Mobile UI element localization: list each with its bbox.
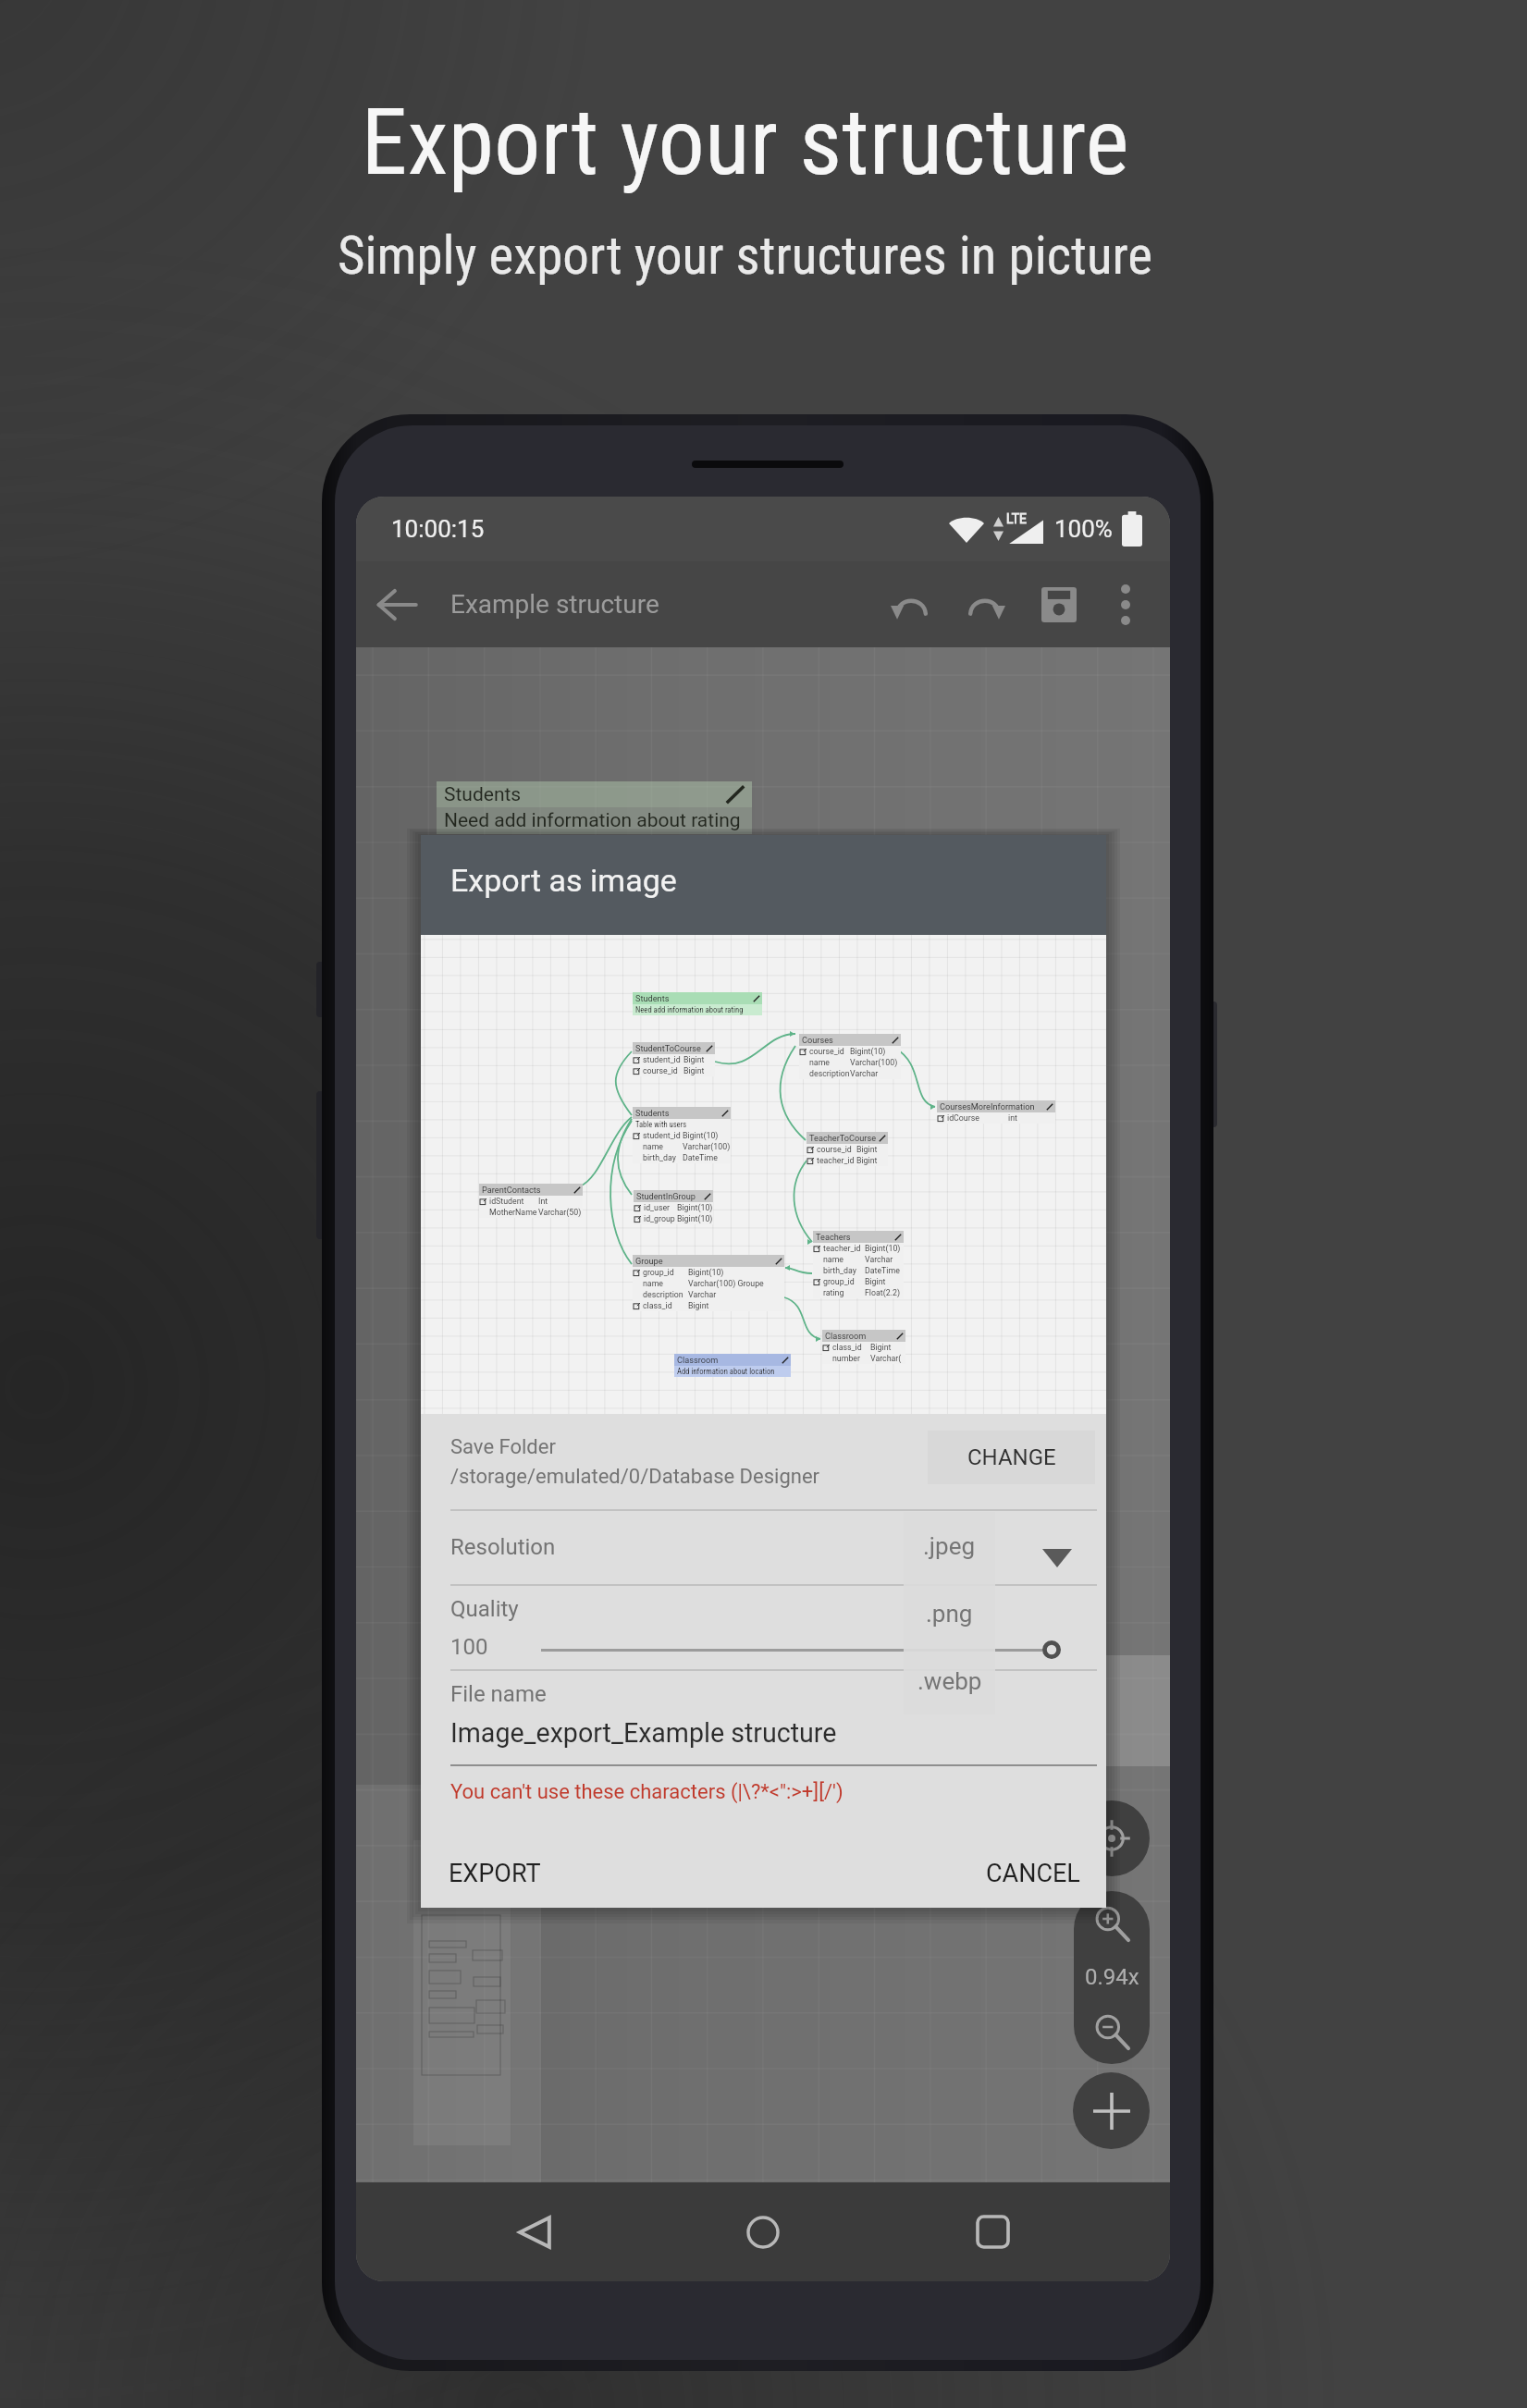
- staticText: Image_export_Example structure: [450, 1717, 837, 1749]
- button[interactable]: .webp: [904, 1647, 995, 1714]
- staticText: birth_day: [823, 1266, 865, 1275]
- staticText: Teachers: [816, 1232, 851, 1242]
- staticText: Varchar(50): [538, 1208, 583, 1217]
- staticText: student_id: [643, 1131, 683, 1140]
- staticText: class_id: [832, 1343, 870, 1352]
- staticText: .webp: [917, 1667, 982, 1695]
- staticText: File name: [450, 1681, 547, 1707]
- staticText: LTE: [1006, 511, 1027, 526]
- staticText: name: [643, 1279, 688, 1288]
- staticText: CHANGE: [967, 1444, 1056, 1470]
- staticText: Float(2.2): [865, 1288, 904, 1297]
- button[interactable]: Back: [484, 2182, 585, 2281]
- button[interactable]: Home: [712, 2182, 814, 2281]
- staticText: Varchar(5): [870, 1354, 905, 1363]
- staticText: Example structure: [450, 589, 659, 620]
- staticText: Varchar: [688, 1290, 784, 1299]
- staticText: ParentContacts: [482, 1185, 541, 1195]
- staticText: Bigint(10): [688, 1268, 784, 1277]
- staticText: 100%: [1054, 515, 1113, 543]
- staticText: Bigint: [865, 1277, 904, 1286]
- button[interactable]: EXPORT: [438, 1849, 551, 1898]
- staticText: Varchar(100): [683, 1142, 731, 1151]
- staticText: You can't use these characters (|\?*<":>…: [450, 1780, 844, 1804]
- staticText: course_id: [643, 1066, 683, 1075]
- button[interactable]: Navigate up: [356, 564, 437, 645]
- staticText: CANCEL: [986, 1859, 1080, 1888]
- staticText: group_id: [643, 1268, 688, 1277]
- staticText: DateTime: [865, 1266, 904, 1275]
- staticText: 10:00:15: [391, 515, 485, 543]
- staticText: Export your structure: [0, 88, 1509, 197]
- staticText: e: [1050, 1533, 1062, 1559]
- staticText: birth_day: [643, 1153, 683, 1162]
- staticText: Courses: [802, 1035, 833, 1045]
- staticText: teacher_id: [817, 1156, 856, 1165]
- button[interactable]: Add table: [1073, 2072, 1150, 2149]
- staticText: TeacherToCourse: [809, 1133, 877, 1143]
- button[interactable]: Redo: [948, 568, 1022, 642]
- staticText: Bigint: [870, 1343, 905, 1352]
- staticText: group_id: [823, 1277, 865, 1286]
- staticText: Add information about location: [677, 1367, 775, 1376]
- staticText: Groupe: [635, 1256, 663, 1266]
- staticText: Students: [444, 783, 522, 806]
- staticText: Students: [635, 993, 670, 1003]
- staticText: Bigint(10): [677, 1214, 713, 1223]
- staticText: Varchar: [850, 1069, 901, 1078]
- staticText: id_user: [644, 1203, 677, 1212]
- staticText: course_id: [809, 1047, 850, 1056]
- staticText: idStudent: [489, 1197, 538, 1206]
- staticText: Int: [538, 1197, 583, 1206]
- staticText: MotherName: [489, 1208, 538, 1217]
- staticText: Bigint(10): [865, 1244, 904, 1253]
- button[interactable]: .png: [904, 1579, 995, 1647]
- staticText: DateTime: [683, 1153, 731, 1162]
- button[interactable]: Recent apps: [942, 2182, 1043, 2281]
- button[interactable]: Zoom out: [1074, 1998, 1150, 2064]
- staticText: Bigint(10): [677, 1203, 713, 1212]
- staticText: /storage/emulated/0/Database Designer: [450, 1465, 820, 1489]
- staticText: Need add information about rating: [635, 1005, 744, 1014]
- staticText: description: [643, 1290, 688, 1299]
- staticText: Bigint(10): [850, 1047, 901, 1056]
- staticText: CoursesMoreInformation: [940, 1101, 1035, 1112]
- staticText: class_id: [643, 1301, 688, 1310]
- staticText: Save Folder: [450, 1435, 556, 1459]
- staticText: student_id: [643, 1055, 683, 1064]
- button[interactable]: Zoom in: [1074, 1891, 1150, 1956]
- staticText: Classroom: [677, 1355, 719, 1365]
- staticText: name: [643, 1142, 683, 1151]
- staticText: Bigint: [688, 1301, 784, 1310]
- staticText: Varchar(100) Groupe number: [688, 1279, 784, 1288]
- staticText: course_id: [817, 1145, 856, 1154]
- button[interactable]: Save: [1022, 568, 1096, 642]
- staticText: 100: [450, 1634, 488, 1660]
- staticText: number: [832, 1354, 870, 1363]
- button[interactable]: CHANGE: [928, 1431, 1095, 1484]
- staticText: Classroom: [825, 1331, 867, 1341]
- button[interactable]: .jpeg: [904, 1512, 995, 1579]
- staticText: Bigint: [856, 1156, 888, 1165]
- button[interactable]: More options: [1096, 575, 1155, 634]
- staticText: Students: [635, 1108, 670, 1118]
- staticText: Resolution: [450, 1534, 556, 1560]
- staticText: 0.94x: [1085, 1964, 1139, 1990]
- staticText: Simply export your structures in picture: [0, 225, 1509, 287]
- button[interactable]: Center view: [1074, 1800, 1150, 1876]
- staticText: .png: [926, 1600, 973, 1628]
- staticText: .jpeg: [923, 1532, 976, 1560]
- staticText: id_group: [644, 1214, 677, 1223]
- staticText: name: [809, 1058, 850, 1067]
- staticText: int: [1008, 1113, 1055, 1123]
- staticText: teacher_id: [823, 1244, 865, 1253]
- staticText: StudentInGroup: [636, 1191, 696, 1201]
- staticText: Table with users: [635, 1120, 687, 1129]
- staticText: Bigint: [683, 1055, 715, 1064]
- staticText: StudentToCourse: [635, 1043, 701, 1053]
- staticText: Quality: [450, 1596, 519, 1622]
- button[interactable]: Undo: [874, 568, 948, 642]
- button[interactable]: CANCEL: [976, 1849, 1090, 1898]
